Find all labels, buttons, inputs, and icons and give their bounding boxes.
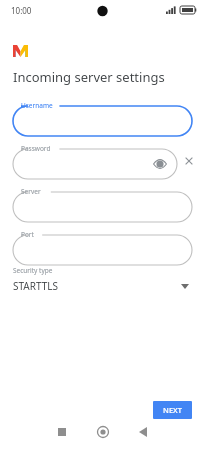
staticText: Incoming server settings: [13, 68, 165, 86]
button[interactable]: Clear password: [182, 154, 196, 168]
button[interactable]: NEXT: [153, 401, 192, 419]
button[interactable]: Security type: [0, 264, 205, 300]
button[interactable]: Password: [13, 143, 177, 179]
button[interactable]: Show password: [153, 157, 167, 171]
button[interactable]: Recents: [52, 422, 72, 442]
staticText: Password: [21, 144, 51, 153]
staticText: Server: [21, 187, 41, 196]
staticText: Username: [21, 101, 53, 110]
staticText: NEXT: [163, 405, 182, 415]
staticText: 10:00: [11, 5, 32, 16]
staticText: STARTTLS: [13, 279, 59, 293]
staticText: Security type: [13, 266, 53, 275]
button[interactable]: Server: [13, 186, 192, 222]
button[interactable]: Port: [13, 229, 192, 265]
button[interactable]: Back: [133, 422, 153, 442]
button[interactable]: Username: [13, 100, 192, 136]
staticText: Port: [21, 230, 34, 239]
button[interactable]: Home: [93, 422, 113, 442]
other: Gmail: [13, 45, 28, 57]
